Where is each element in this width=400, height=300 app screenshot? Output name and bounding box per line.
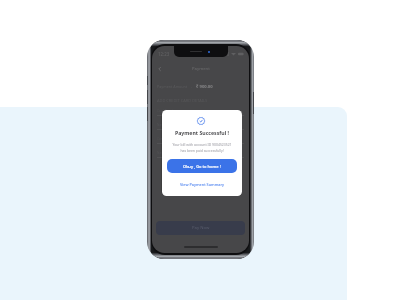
staticText: View Payment Summary xyxy=(180,182,225,187)
staticText: Pay Now xyxy=(192,225,210,231)
staticText: Payment Successful ! xyxy=(175,129,230,136)
staticText: Your bill with account ID 9004523521 has… xyxy=(162,142,242,153)
staticText: 12:23 xyxy=(158,51,170,57)
staticText: Payment Amount xyxy=(157,84,188,89)
staticText: Okuy , Go to home ! xyxy=(183,164,221,169)
button[interactable]: View Payment Summary xyxy=(180,182,225,187)
staticText: Payment xyxy=(192,66,210,72)
staticText: Card Number xyxy=(157,109,178,113)
staticText: Name on card xyxy=(157,123,179,127)
staticText: ₹ 900.00 xyxy=(196,84,213,90)
button[interactable]: Okuy , Go to home ! xyxy=(167,159,237,173)
staticText: Card Number xyxy=(157,137,178,141)
staticText: Name on card xyxy=(157,151,179,155)
staticText: ADD CREDIT CARD DETAILS xyxy=(157,98,208,103)
button[interactable]: Back xyxy=(156,65,164,73)
